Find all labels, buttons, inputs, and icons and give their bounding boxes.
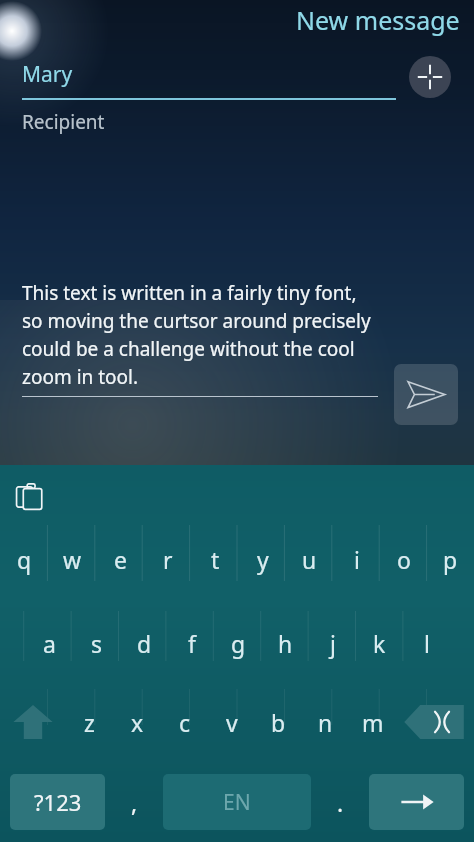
button[interactable]: Shift [0, 691, 65, 753]
button[interactable]: f [168, 613, 215, 673]
staticText: u [302, 544, 317, 575]
button[interactable]: t [192, 529, 239, 589]
button[interactable]: s [73, 613, 121, 673]
staticText: m [362, 707, 384, 738]
button[interactable]: EN [163, 774, 311, 830]
staticText: ?123 [34, 787, 82, 817]
button[interactable]: j [309, 613, 356, 673]
button[interactable]: , [105, 774, 163, 830]
button[interactable]: k [356, 613, 403, 673]
staticText: s [91, 628, 103, 659]
staticText: . [337, 787, 344, 818]
staticText: j [330, 628, 336, 659]
staticText: o [397, 544, 411, 575]
button[interactable]: Clipboard [6, 473, 54, 521]
button[interactable]: v [208, 691, 255, 753]
staticText: z [84, 707, 95, 738]
staticText: This text is written in a fairly tiny fo… [22, 280, 376, 390]
button[interactable]: g [215, 613, 262, 673]
staticText: v [226, 707, 238, 738]
button[interactable]: o [380, 529, 427, 589]
button[interactable]: Send [394, 364, 458, 425]
button[interactable]: u [286, 529, 333, 589]
button[interactable]: Add recipient [409, 56, 451, 98]
button[interactable]: z [65, 691, 113, 753]
staticText: a [43, 628, 56, 659]
staticText: k [373, 628, 386, 659]
staticText: w [63, 544, 82, 575]
button[interactable]: p [427, 529, 474, 589]
staticText: e [114, 544, 127, 575]
button[interactable]: x [113, 691, 161, 753]
button[interactable]: y [239, 529, 286, 589]
staticText: h [278, 628, 293, 659]
staticText: l [424, 628, 430, 659]
button[interactable]: a [25, 613, 73, 673]
button[interactable]: . [311, 774, 369, 830]
button[interactable]: n [302, 691, 349, 753]
button[interactable]: l [403, 613, 450, 673]
staticText: f [188, 628, 196, 659]
staticText: t [211, 544, 220, 575]
button[interactable]: This text is written in a fairly tiny fo… [22, 280, 376, 390]
staticText: i [354, 544, 360, 575]
button[interactable]: b [255, 691, 302, 753]
staticText: n [318, 707, 333, 738]
button[interactable]: ?123 [10, 774, 105, 830]
button[interactable]: h [262, 613, 309, 673]
button[interactable]: Enter [369, 774, 464, 830]
button[interactable]: c [161, 691, 208, 753]
button[interactable]: r [144, 529, 192, 589]
staticText: x [131, 707, 144, 738]
button[interactable]: d [121, 613, 168, 673]
button[interactable]: m [349, 691, 396, 753]
staticText: Mary [22, 60, 73, 89]
staticText: d [137, 628, 152, 659]
button[interactable]: i [333, 529, 380, 589]
staticText: p [443, 544, 458, 575]
staticText: b [271, 707, 286, 738]
staticText: EN [223, 788, 251, 817]
staticText: g [231, 628, 246, 659]
staticText: , [131, 787, 138, 818]
staticText: y [257, 544, 269, 575]
staticText: q [17, 544, 32, 575]
button[interactable]: e [96, 529, 144, 589]
button[interactable]: q [0, 529, 48, 589]
staticText: Recipient [22, 109, 105, 135]
staticText: r [163, 544, 173, 575]
staticText: New message [296, 3, 460, 37]
button[interactable]: w [48, 529, 96, 589]
staticText: c [179, 707, 191, 738]
button[interactable]: Backspace [396, 691, 474, 753]
button[interactable]: New message [0, 0, 474, 40]
